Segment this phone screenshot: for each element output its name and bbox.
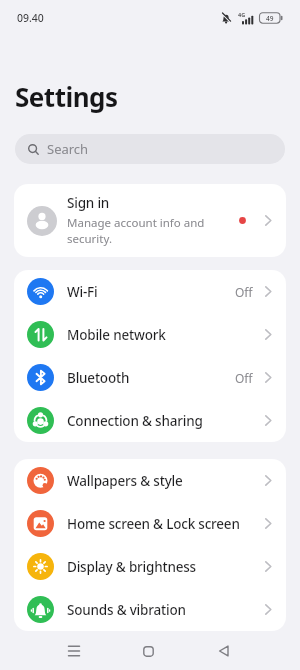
button[interactable]: Sounds & vibration xyxy=(14,588,286,631)
button[interactable]: Display & brightness xyxy=(14,545,286,588)
staticText: Off xyxy=(235,370,253,386)
staticText: Connection & sharing xyxy=(67,412,203,430)
button[interactable] xyxy=(186,639,261,663)
staticText: Wi-Fi xyxy=(67,283,98,301)
button[interactable]: Home screen & Lock screen xyxy=(14,502,286,545)
staticText: Home screen & Lock screen xyxy=(67,515,240,533)
staticText: Sounds & vibration xyxy=(67,601,186,619)
staticText: Search xyxy=(47,140,89,158)
staticText: Display & brightness xyxy=(67,558,196,576)
button[interactable] xyxy=(36,639,111,663)
button[interactable]: Wallpapers & style xyxy=(14,459,286,502)
button[interactable]: Connection & sharing xyxy=(14,399,286,442)
staticText: Mobile network xyxy=(67,326,166,344)
staticText: Bluetooth xyxy=(67,369,130,387)
button[interactable]: Sign in xyxy=(14,184,286,257)
staticText: 49 xyxy=(266,14,274,23)
staticText: Sign in xyxy=(67,194,110,212)
button[interactable]: Bluetooth xyxy=(14,356,286,399)
staticText: Off xyxy=(235,284,253,300)
staticText: Wallpapers & style xyxy=(67,472,183,490)
button[interactable] xyxy=(111,639,186,663)
staticText: Manage account info and security. xyxy=(67,215,219,247)
staticText: Settings xyxy=(15,79,118,114)
staticText: 09.40 xyxy=(17,11,44,25)
button[interactable]: Wi-Fi xyxy=(14,270,286,313)
button[interactable]: Search xyxy=(15,134,285,164)
button[interactable]: Mobile network xyxy=(14,313,286,356)
staticText: 4G xyxy=(238,11,246,18)
